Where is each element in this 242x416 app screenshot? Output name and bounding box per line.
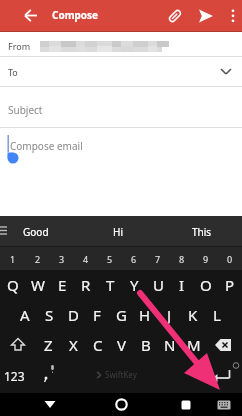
button[interactable]: Good [23, 225, 49, 239]
staticText: P [225, 275, 235, 295]
button[interactable]: Hi [113, 225, 123, 239]
staticText: V [117, 335, 127, 355]
button[interactable]: 4 [74, 247, 98, 270]
button[interactable]: 0 [218, 247, 242, 270]
staticText: SwiftKey [105, 369, 137, 380]
button[interactable]: I [170, 270, 194, 300]
button[interactable]: X [61, 330, 86, 360]
button[interactable]: S [37, 300, 61, 330]
staticText: To [8, 66, 18, 78]
staticText: 3 [59, 253, 65, 265]
button[interactable]: W [25, 270, 50, 300]
button[interactable]: From [0, 32, 242, 57]
staticText: 0 [227, 253, 233, 265]
button[interactable]: B [134, 330, 158, 360]
button[interactable]: 1 [0, 247, 25, 270]
staticText: M [187, 335, 201, 355]
button[interactable]: 6 [122, 247, 146, 270]
staticText: X [69, 335, 78, 355]
button[interactable]: J [157, 300, 181, 330]
staticText: Compose [52, 8, 98, 22]
button[interactable]: L [205, 300, 229, 330]
staticText: 8 [179, 253, 185, 265]
button[interactable]: 9 [194, 247, 218, 270]
button[interactable]: A [13, 300, 37, 330]
button[interactable] [208, 362, 238, 392]
staticText: 6 [131, 253, 137, 265]
staticText: I [179, 275, 185, 295]
button[interactable]: Compose email [0, 128, 242, 173]
button[interactable]: Q [0, 270, 25, 300]
button[interactable]: C [86, 330, 110, 360]
staticText: 4 [83, 253, 89, 265]
button[interactable]: Subject [0, 87, 242, 128]
button[interactable]: P [218, 270, 242, 300]
button[interactable]: V [110, 330, 134, 360]
button[interactable]: 123 [4, 368, 25, 384]
staticText: L [213, 305, 221, 325]
button[interactable]: 5 [98, 247, 122, 270]
staticText: D [68, 305, 79, 325]
staticText: 7 [155, 253, 161, 265]
button[interactable] [42, 364, 58, 386]
staticText: E [58, 275, 67, 295]
staticText: 2 [35, 253, 41, 265]
staticText: G [116, 305, 127, 325]
staticText: U [153, 275, 164, 295]
button[interactable] [226, 9, 240, 23]
button[interactable]: D [61, 300, 85, 330]
button[interactable]: K [181, 300, 205, 330]
button[interactable]: T [98, 270, 122, 300]
staticText: J [167, 305, 172, 325]
button[interactable] [171, 393, 201, 416]
button[interactable]: U [146, 270, 170, 300]
staticText: F [93, 305, 101, 325]
staticText: Z [44, 335, 53, 355]
button[interactable]: H [133, 300, 157, 330]
staticText: A [20, 305, 30, 325]
button[interactable]: N [158, 330, 182, 360]
button[interactable] [167, 8, 183, 24]
button[interactable]: F [85, 300, 109, 330]
button[interactable] [106, 393, 136, 416]
staticText: 1 [10, 253, 16, 265]
button[interactable]: Z [36, 330, 61, 360]
button[interactable]: R [74, 270, 98, 300]
button[interactable] [206, 330, 242, 360]
button[interactable]: To [0, 57, 242, 87]
staticText: W [31, 275, 45, 295]
staticText: B [141, 335, 151, 355]
button[interactable]: O [194, 270, 218, 300]
button[interactable]: G [109, 300, 133, 330]
staticText: T [106, 275, 115, 295]
button[interactable]: M [182, 330, 206, 360]
button[interactable]: E [50, 270, 74, 300]
staticText: Compose email [10, 139, 83, 153]
staticText: H [139, 305, 151, 325]
staticText: Subject [8, 103, 43, 117]
staticText: K [188, 305, 198, 325]
button[interactable]: Y [122, 270, 146, 300]
button[interactable] [0, 330, 36, 360]
button[interactable] [35, 393, 65, 416]
button[interactable]: 8 [170, 247, 194, 270]
staticText: From [8, 40, 31, 52]
button[interactable]: 3 [50, 247, 74, 270]
staticText: R [81, 275, 91, 295]
button[interactable] [211, 393, 237, 416]
staticText: Q [7, 275, 19, 295]
staticText: 5 [107, 253, 113, 265]
button[interactable]: 2 [25, 247, 50, 270]
staticText: O [200, 275, 212, 295]
button[interactable] [198, 8, 214, 24]
button[interactable]: 7 [146, 247, 170, 270]
staticText: Y [130, 275, 139, 295]
staticText: S [45, 305, 54, 325]
staticText: N [164, 335, 176, 355]
button[interactable] [24, 9, 38, 23]
staticText: C [93, 335, 103, 355]
button[interactable]: This [192, 225, 212, 239]
staticText: 9 [203, 253, 209, 265]
